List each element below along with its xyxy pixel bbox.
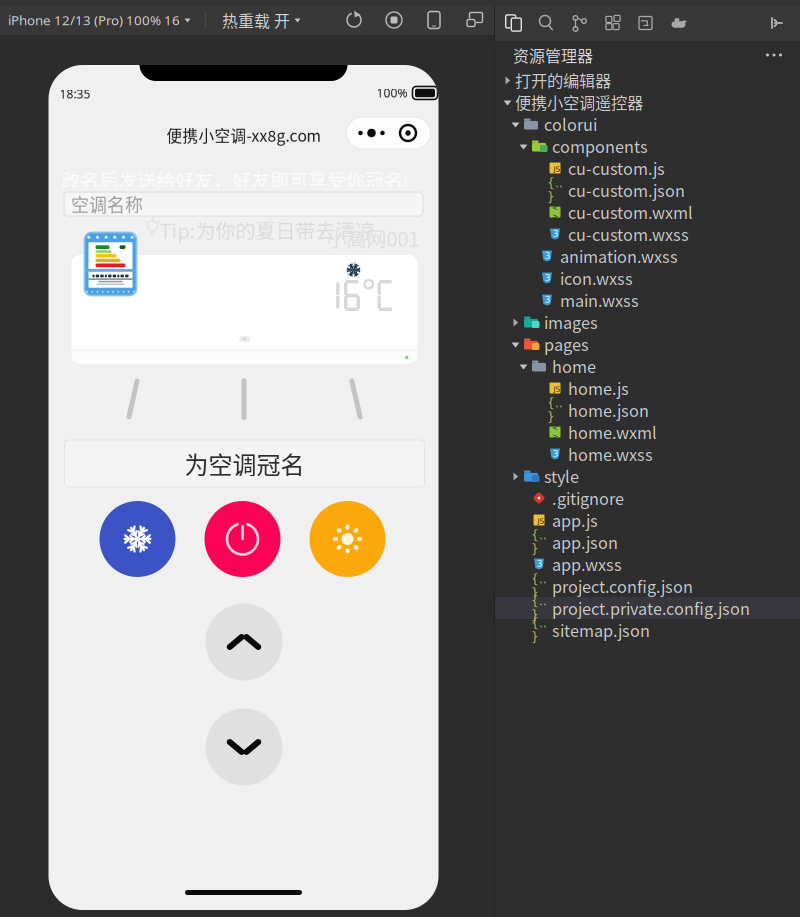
button[interactable]: 电源 xyxy=(204,501,280,577)
staticText: app.json xyxy=(552,530,618,554)
staticText: JS xyxy=(553,165,560,173)
staticText: 打开的编辑器 xyxy=(515,68,611,92)
staticText: {..} xyxy=(531,528,547,556)
button[interactable]: 3 xyxy=(495,553,800,575)
button[interactable]: 制热 xyxy=(309,501,385,577)
staticText: cu-custom.wxml xyxy=(568,200,693,224)
staticText: 热重载 开 xyxy=(222,8,290,32)
staticText: {..} xyxy=(547,176,563,204)
staticText: 改名后发送给好友，好友即可享受你冠名的空调冷气~ xyxy=(61,165,508,192)
staticText: colorui xyxy=(544,112,597,136)
button[interactable]: 3 xyxy=(495,245,800,267)
button[interactable]: {..} xyxy=(495,597,800,619)
button[interactable]: 更多 xyxy=(346,117,430,149)
staticText: home.js xyxy=(568,376,629,400)
button[interactable]: 资源管理器 xyxy=(497,6,530,40)
staticText: iPhone 12/13 (Pro) 100% 16 xyxy=(8,11,180,29)
button[interactable]: <> xyxy=(495,421,800,443)
button[interactable]: pages xyxy=(495,333,800,355)
staticText: cu-custom.js xyxy=(568,156,665,180)
staticText: 便携小空调-xx8g.com xyxy=(166,124,320,146)
staticText: sitemap.json xyxy=(552,618,650,642)
staticText: cu-custom.wxss xyxy=(568,222,689,246)
staticText: 18:35 xyxy=(59,86,90,102)
staticText: home.json xyxy=(568,398,649,422)
button[interactable]: style xyxy=(495,465,800,487)
button[interactable]: 真机调试 xyxy=(414,5,454,35)
button[interactable]: 预览 xyxy=(374,5,414,35)
button[interactable]: {..} xyxy=(495,399,800,421)
staticText: components xyxy=(552,134,648,158)
staticText: JS xyxy=(553,385,560,393)
staticText: 3 xyxy=(544,272,550,283)
button[interactable]: <> xyxy=(495,201,800,223)
staticText: pages xyxy=(544,332,589,356)
button[interactable]: 降温 xyxy=(205,708,282,785)
staticText: app.js xyxy=(552,508,598,532)
staticText: {..} xyxy=(531,572,547,600)
button[interactable]: home xyxy=(495,355,800,377)
button[interactable]: 扩展 xyxy=(596,6,629,40)
staticText: .gitignore xyxy=(552,486,624,510)
button[interactable]: 制冷 xyxy=(99,501,175,577)
staticText: Tip:为你的夏日带去清凉 xyxy=(159,215,375,244)
staticText: {..} xyxy=(531,594,547,622)
button[interactable]: 容器 xyxy=(662,6,695,40)
button[interactable]: .gitignore xyxy=(495,487,800,509)
staticText: images xyxy=(544,310,598,334)
staticText: <> xyxy=(552,423,558,441)
staticText: 便携小空调遥控器 xyxy=(515,90,643,114)
button[interactable]: 小程序 xyxy=(629,6,662,40)
staticText: {..} xyxy=(547,396,563,424)
staticText: home.wxss xyxy=(568,442,653,466)
button[interactable]: 3 xyxy=(495,223,800,245)
staticText: 资源管理器 xyxy=(513,43,593,67)
staticText: {..} xyxy=(531,616,547,644)
button[interactable]: {..} xyxy=(495,575,800,597)
staticText: 3 xyxy=(544,294,550,305)
staticText: 3 xyxy=(552,228,558,239)
button[interactable]: colorui xyxy=(495,113,800,135)
button[interactable]: JS xyxy=(495,377,800,399)
staticText: 为空调冠名 xyxy=(184,446,304,481)
button[interactable]: images xyxy=(495,311,800,333)
staticText: <> xyxy=(552,203,558,221)
staticText: icon.wxss xyxy=(560,266,633,290)
button[interactable]: 源代码管理 xyxy=(563,6,596,40)
button[interactable]: 空调名称 xyxy=(64,192,423,216)
staticText: animation.wxss xyxy=(560,244,678,268)
staticText: 3 xyxy=(536,558,542,569)
button[interactable]: 编译 xyxy=(334,5,374,35)
button[interactable]: 便携小空调遥控器 xyxy=(495,91,800,113)
button[interactable]: JS xyxy=(495,509,800,531)
staticText: 3 xyxy=(544,250,550,261)
staticText: style xyxy=(544,464,579,488)
button[interactable]: 3 xyxy=(495,289,800,311)
button[interactable]: {..} xyxy=(495,619,800,641)
button[interactable]: iPhone 12/13 (Pro) 100% 16 xyxy=(0,5,205,35)
button[interactable]: 更多操作 xyxy=(761,44,787,66)
staticText: home.wxml xyxy=(568,420,657,444)
button[interactable]: 3 xyxy=(495,267,800,289)
staticText: 100% xyxy=(376,85,407,101)
staticText: project.private.config.json xyxy=(552,596,750,620)
button[interactable]: {..} xyxy=(495,531,800,553)
staticText: main.wxss xyxy=(560,288,639,312)
staticText: project.config.json xyxy=(552,574,693,598)
button[interactable]: 搜索 xyxy=(530,6,563,40)
button[interactable]: components xyxy=(495,135,800,157)
button[interactable]: JS xyxy=(495,157,800,179)
button[interactable]: 打开的编辑器 xyxy=(495,69,800,91)
button[interactable]: 3 xyxy=(495,443,800,465)
button[interactable]: 升温 xyxy=(205,603,282,680)
button[interactable]: 折叠侧栏 xyxy=(762,6,792,40)
staticText: 小高网001 xyxy=(326,223,419,252)
staticText: 空调名称 xyxy=(71,191,143,217)
button[interactable]: {..} xyxy=(495,179,800,201)
staticText: app.wxss xyxy=(552,552,622,576)
button[interactable]: 切换布局 xyxy=(454,5,494,35)
button[interactable]: 热重载 开 xyxy=(206,5,317,35)
staticText: cu-custom.json xyxy=(568,178,685,202)
button[interactable]: 为空调冠名 xyxy=(64,440,424,487)
staticText: 3 xyxy=(552,448,558,459)
